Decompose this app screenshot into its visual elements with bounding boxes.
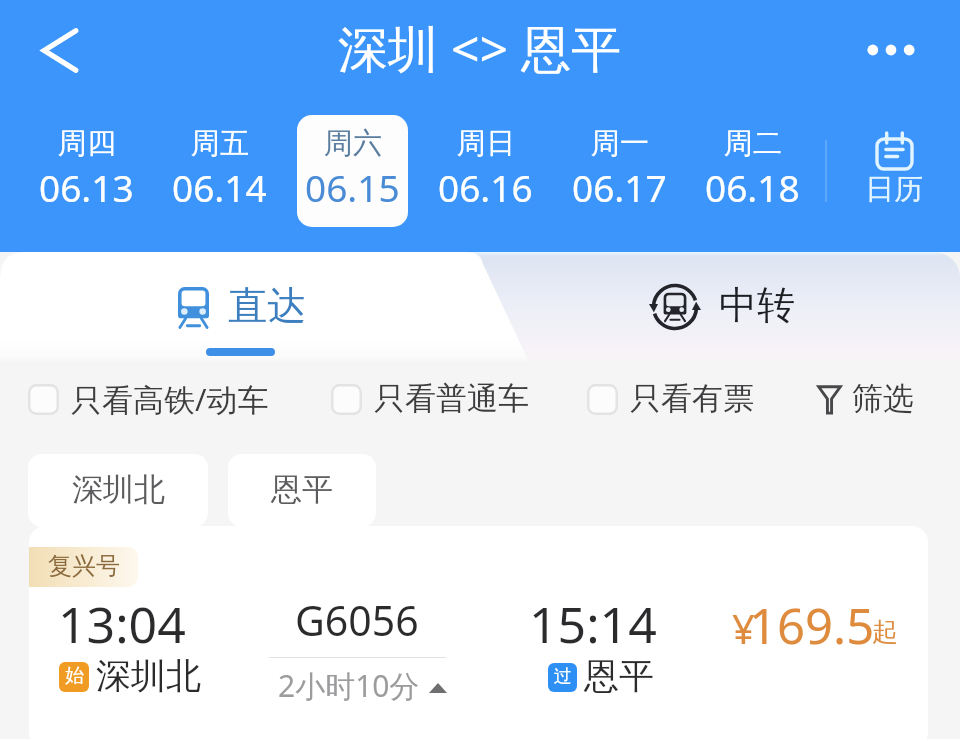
staticText: 169.5 [749, 592, 875, 659]
staticText: 周四 [58, 125, 116, 162]
staticText: 06.18 [705, 162, 800, 212]
staticText: 直达 [228, 281, 306, 330]
staticText: 06.14 [172, 162, 267, 212]
button[interactable]: 直达 [0, 252, 470, 362]
staticText: 只看有票 [630, 379, 754, 418]
button[interactable]: 只看有票 [587, 362, 754, 437]
staticText: 06.16 [438, 162, 533, 212]
button[interactable]: 复兴号 [29, 526, 928, 739]
staticText: 2小时10分 [278, 665, 420, 706]
staticText: 06.13 [39, 162, 134, 212]
button[interactable]: 恩平 [228, 454, 376, 527]
staticText: 恩平 [584, 654, 654, 698]
staticText: 只看普通车 [374, 379, 529, 418]
staticText: 周二 [724, 125, 782, 162]
staticText: 深圳 <> 恩平 [338, 14, 622, 82]
staticText: 15:14 [529, 590, 657, 658]
staticText: ¥ [732, 601, 755, 655]
button[interactable]: 周四 [31, 115, 142, 227]
staticText: 日历 [865, 171, 923, 208]
staticText: 过 [554, 665, 572, 688]
staticText: G6056 [295, 592, 419, 648]
button[interactable]: 周二 [697, 115, 808, 227]
staticText: 深圳北 [96, 654, 201, 698]
button[interactable]: 周五 [164, 115, 275, 227]
staticText: 只看高铁/动车 [71, 378, 269, 420]
button[interactable]: 只看普通车 [331, 362, 529, 437]
staticText: 复兴号 [48, 551, 120, 581]
staticText: 恩平 [271, 470, 333, 509]
button[interactable]: 周六 [297, 115, 408, 227]
staticText: 周一 [591, 125, 649, 162]
staticText: 13:04 [58, 590, 186, 658]
button[interactable]: 只看高铁/动车 [28, 362, 269, 437]
staticText: 起 [872, 616, 898, 649]
staticText: 06.15 [305, 162, 400, 212]
staticText: 深圳北 [72, 470, 165, 509]
button[interactable]: 周日 [430, 115, 541, 227]
staticText: 周日 [457, 125, 515, 162]
staticText: 始 [65, 664, 84, 688]
staticText: 06.17 [572, 162, 667, 212]
staticText: 筛选 [852, 379, 914, 418]
staticText: 中转 [719, 281, 795, 329]
button[interactable]: 中转 [650, 252, 960, 362]
staticText: 周五 [191, 125, 249, 162]
button[interactable]: Calendar [846, 117, 942, 229]
button[interactable]: 筛选 [818, 362, 914, 437]
button[interactable]: More options [853, 12, 929, 88]
button[interactable]: 深圳北 [28, 454, 208, 527]
button[interactable]: 周一 [564, 115, 675, 227]
staticText: 周六 [324, 125, 382, 162]
button[interactable]: Back [22, 12, 98, 88]
